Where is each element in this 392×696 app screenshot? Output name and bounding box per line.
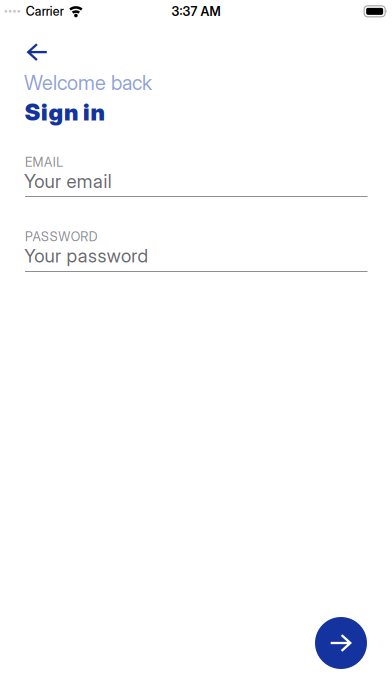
button[interactable]: Back bbox=[0, 0, 47, 61]
button[interactable]: Sign in bbox=[315, 617, 367, 669]
button[interactable]: Password, text field bbox=[0, 0, 367, 272]
staticText: Your password bbox=[24, 244, 149, 267]
staticText: Sign in bbox=[24, 98, 104, 126]
staticText: Welcome back bbox=[24, 70, 152, 95]
staticText: Your email bbox=[24, 170, 112, 193]
staticText: 3:37 AM bbox=[171, 4, 220, 19]
staticText: PASSWORD bbox=[25, 229, 98, 244]
staticText: EMAIL bbox=[25, 154, 63, 170]
button[interactable]: Email, text field bbox=[0, 0, 367, 197]
staticText: Carrier bbox=[26, 4, 64, 19]
